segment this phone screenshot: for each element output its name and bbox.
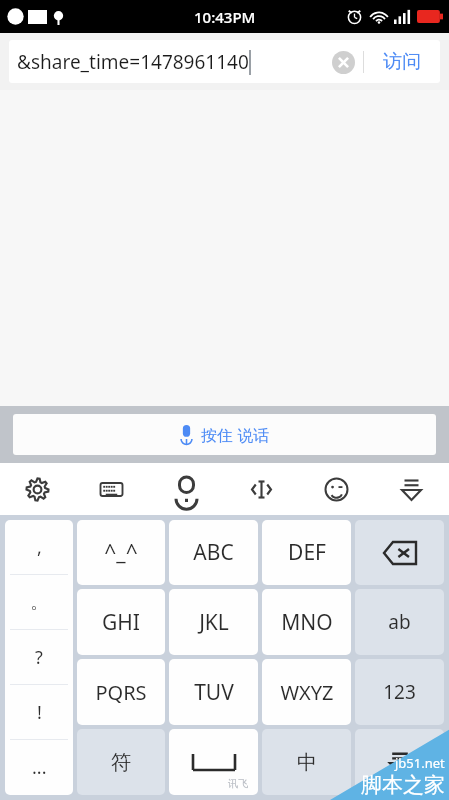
staticText: 。: [30, 591, 48, 614]
staticText: 按住 说话: [201, 424, 270, 446]
button[interactable]: TUV: [169, 659, 258, 725]
button[interactable]: 123: [355, 659, 444, 725]
staticText: ?: [35, 645, 43, 670]
button[interactable]: Space: [169, 729, 258, 795]
staticText: ^_^: [104, 538, 138, 567]
staticText: TUV: [194, 678, 234, 707]
button[interactable]: Clear: [323, 42, 363, 82]
staticText: ab: [388, 609, 411, 635]
button[interactable]: Delete: [355, 520, 444, 585]
button[interactable]: 访问: [364, 40, 440, 83]
button[interactable]: Cursor move: [224, 463, 299, 515]
staticText: 10:43PM: [194, 7, 256, 27]
button[interactable]: Emoji: [299, 463, 374, 515]
staticText: &share_time=1478961140: [17, 49, 249, 75]
staticText: ABC: [193, 538, 234, 567]
button[interactable]: ,: [5, 520, 73, 575]
staticText: 访问: [383, 50, 421, 74]
button[interactable]: Voice input: [149, 463, 224, 515]
staticText: 123: [383, 679, 416, 705]
staticText: ...: [32, 755, 47, 780]
staticText: 讯飞: [228, 777, 248, 790]
button[interactable]: PQRS: [77, 659, 165, 725]
staticText: 脚本之家: [361, 772, 445, 798]
button[interactable]: 中: [262, 729, 351, 795]
button[interactable]: ?: [5, 630, 73, 685]
button[interactable]: Keyboard layout: [74, 463, 149, 515]
staticText: JKL: [199, 608, 229, 637]
button[interactable]: 符: [77, 729, 165, 795]
staticText: jb51.net: [395, 754, 445, 772]
button[interactable]: GHI: [77, 589, 165, 655]
button[interactable]: 。: [5, 575, 73, 630]
button[interactable]: 按住 说话: [13, 414, 436, 455]
button[interactable]: Enter: [355, 729, 444, 795]
button[interactable]: ab: [355, 589, 444, 655]
button[interactable]: DEF: [262, 520, 351, 585]
staticText: ,: [37, 535, 42, 560]
button[interactable]: Hide keyboard: [374, 463, 449, 515]
staticText: GHI: [102, 608, 140, 637]
button[interactable]: Settings: [0, 463, 74, 515]
staticText: PQRS: [95, 679, 147, 706]
button[interactable]: WXYZ: [262, 659, 351, 725]
button[interactable]: &share_time=1478961140: [9, 40, 440, 83]
staticText: 中: [297, 750, 317, 775]
button[interactable]: ^_^: [77, 520, 165, 585]
staticText: !: [37, 700, 42, 725]
button[interactable]: MNO: [262, 589, 351, 655]
button[interactable]: ...: [5, 740, 73, 795]
button[interactable]: !: [5, 685, 73, 740]
staticText: WXYZ: [280, 679, 334, 706]
staticText: MNO: [281, 608, 333, 637]
staticText: DEF: [288, 538, 326, 567]
staticText: 符: [111, 750, 131, 775]
button[interactable]: ABC: [169, 520, 258, 585]
button[interactable]: JKL: [169, 589, 258, 655]
